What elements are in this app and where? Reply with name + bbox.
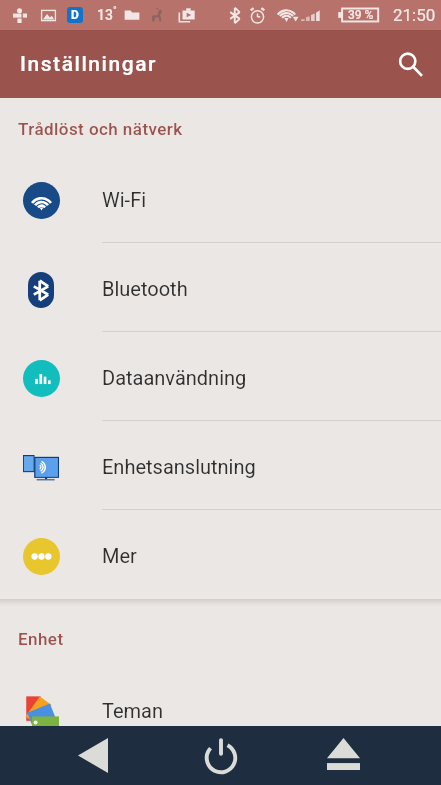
staticText: Dataanvändning — [102, 366, 247, 389]
button[interactable]: Wi-Fi — [0, 154, 441, 243]
staticText: Bluetooth — [102, 277, 188, 300]
staticText: Enhetsanslutning — [102, 455, 256, 478]
staticText: ° — [113, 5, 117, 17]
button[interactable]: Teman — [0, 665, 441, 754]
button[interactable]: Mata ut — [296, 726, 390, 785]
staticText: Trådlöst och nätverk — [18, 119, 183, 139]
button[interactable]: Enhetsanslutning — [0, 421, 441, 510]
button[interactable]: Bluetooth — [0, 243, 441, 332]
staticText: Enhet — [18, 629, 64, 649]
button[interactable]: Dataanvändning — [0, 332, 441, 421]
staticText: 39 % — [348, 8, 374, 22]
button[interactable]: Sök — [386, 40, 434, 88]
button[interactable]: Hem — [174, 726, 268, 785]
staticText: Inställningar — [20, 52, 157, 77]
button[interactable]: Mer — [0, 510, 441, 599]
staticText: 13 — [97, 7, 113, 23]
staticText: Teman — [102, 699, 164, 722]
staticText: D — [71, 8, 79, 22]
staticText: Wi-Fi — [102, 188, 147, 211]
staticText: 21:50 — [393, 5, 436, 25]
staticText: Mer — [102, 544, 137, 567]
button[interactable]: Tillbaka — [46, 726, 140, 785]
